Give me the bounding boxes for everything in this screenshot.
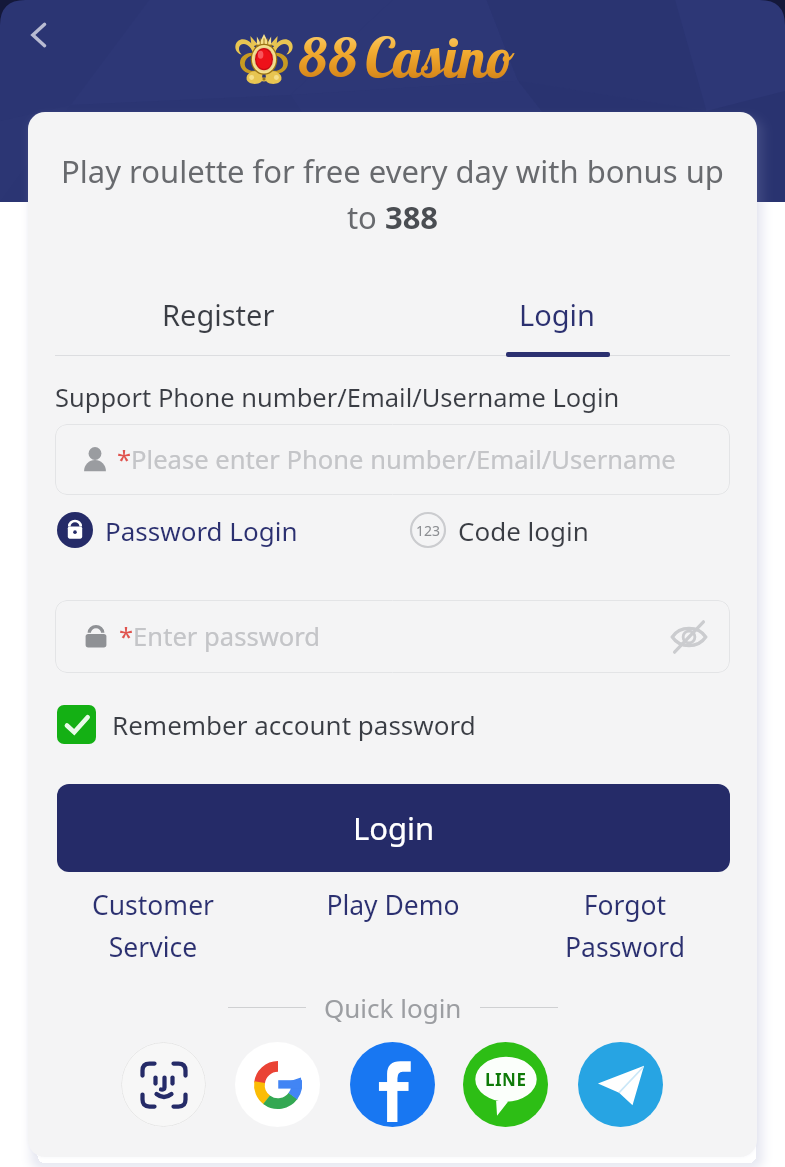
- button[interactable]: Forgot Password: [535, 887, 715, 965]
- staticText: *Please enter Phone number/Email/Usernam…: [117, 442, 676, 477]
- staticText: 88: [298, 23, 358, 91]
- staticText: LINE: [485, 1068, 527, 1091]
- staticText: Casino: [364, 22, 514, 92]
- button[interactable]: *Please enter Phone number/Email/Usernam…: [55, 424, 730, 495]
- button[interactable]: Google login: [235, 1042, 320, 1127]
- staticText: Forgot Password: [535, 887, 715, 965]
- staticText: Login: [519, 295, 595, 334]
- button[interactable]: Remember account password: [57, 705, 476, 744]
- button[interactable]: Facebook login: [350, 1042, 435, 1127]
- button[interactable]: LINE login: [463, 1042, 548, 1127]
- staticText: Customer Service: [63, 887, 243, 965]
- staticText: Code login: [458, 513, 589, 548]
- staticText: Register: [162, 295, 275, 334]
- button[interactable]: Password Login: [57, 512, 298, 548]
- staticText: Play Demo: [303, 887, 483, 923]
- button[interactable]: Telegram login: [578, 1042, 663, 1127]
- button[interactable]: Play Demo: [303, 887, 483, 923]
- staticText: Quick login: [324, 990, 462, 1025]
- button[interactable]: Customer Service: [63, 887, 243, 965]
- staticText: Play roulette for free every day with bo…: [57, 150, 728, 238]
- button[interactable]: Back: [10, 6, 68, 64]
- staticText: Remember account password: [112, 707, 476, 742]
- button[interactable]: Show password: [665, 613, 713, 661]
- button[interactable]: Register: [50, 275, 387, 353]
- staticText: Login: [353, 807, 435, 849]
- staticText: 123: [416, 521, 441, 540]
- button[interactable]: Face ID login: [121, 1042, 206, 1127]
- button[interactable]: Login: [388, 275, 726, 353]
- staticText: Support Phone number/Email/Username Logi…: [55, 380, 620, 415]
- button[interactable]: *Enter password: [55, 600, 730, 673]
- staticText: *Enter password: [119, 619, 321, 654]
- staticText: Password Login: [105, 513, 298, 548]
- button[interactable]: 123: [410, 512, 589, 548]
- button[interactable]: Login: [57, 784, 730, 872]
